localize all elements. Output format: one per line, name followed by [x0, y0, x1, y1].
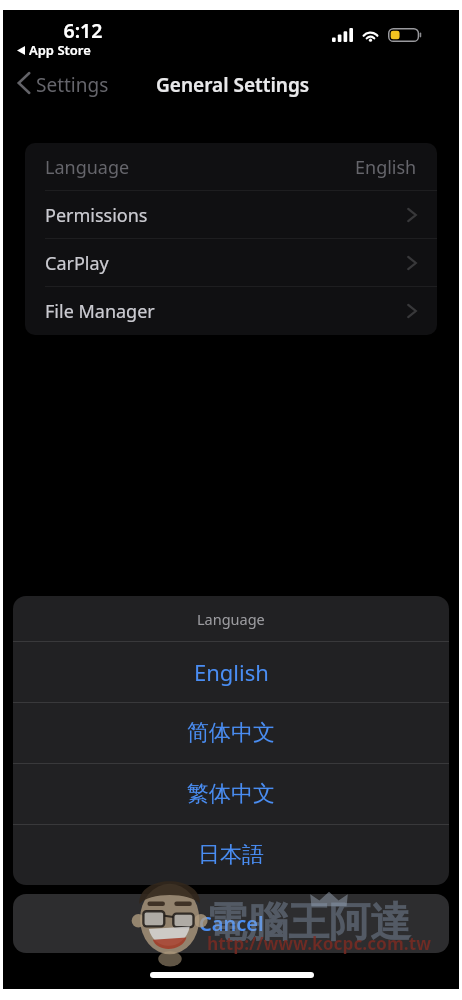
staticText: Language — [197, 609, 265, 629]
button[interactable]: Cancel — [13, 894, 449, 953]
button[interactable]: File Manager — [25, 287, 437, 335]
staticText: http://www.kocpc.com.tw — [207, 932, 431, 956]
staticText: General Settings — [156, 72, 310, 98]
staticText: Cancel — [199, 910, 264, 937]
button[interactable]: 简体中文 — [13, 703, 449, 763]
button[interactable]: 日本語 — [13, 825, 449, 885]
staticText: 繁体中文 — [187, 780, 275, 808]
staticText: CarPlay — [45, 251, 109, 276]
button[interactable]: English — [13, 642, 449, 702]
button[interactable]: Settings — [3, 66, 121, 104]
staticText: Permissions — [45, 203, 148, 228]
staticText: Settings — [36, 72, 109, 98]
staticText: App Store — [29, 41, 91, 59]
staticText: 6:12 — [61, 17, 105, 44]
staticText: 简体中文 — [187, 719, 275, 747]
staticText: Language — [45, 155, 130, 180]
staticText: English — [194, 657, 269, 687]
button[interactable]: 繁体中文 — [13, 764, 449, 824]
staticText: English — [355, 155, 417, 180]
button[interactable]: CarPlay — [25, 239, 437, 287]
staticText: 日本語 — [198, 841, 264, 869]
button[interactable]: Permissions — [25, 191, 437, 239]
staticText: 電腦王阿達 — [206, 897, 411, 949]
button[interactable]: Language — [25, 143, 437, 191]
staticText: File Manager — [45, 299, 155, 324]
